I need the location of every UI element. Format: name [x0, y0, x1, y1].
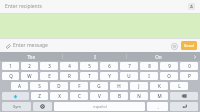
staticText: F	[78, 83, 81, 89]
staticText: U	[127, 73, 131, 79]
button[interactable]: Shift	[2, 92, 29, 100]
button[interactable]: 9	[160, 62, 178, 70]
button[interactable]: Z	[31, 92, 48, 100]
staticText: 1	[9, 63, 12, 69]
button[interactable]: I	[63, 52, 126, 61]
button[interactable]: R	[60, 72, 78, 80]
button[interactable]: 4	[60, 62, 78, 70]
staticText: I	[148, 73, 150, 79]
staticText: J	[138, 83, 140, 89]
button[interactable]: A	[11, 82, 28, 90]
button[interactable]: X	[50, 92, 68, 100]
staticText: I	[94, 54, 96, 60]
button[interactable]: T	[80, 72, 98, 80]
button[interactable]: Add recipient from contacts	[188, 3, 195, 10]
staticText: .	[157, 104, 159, 110]
staticText: Q	[9, 73, 13, 79]
button[interactable]: More suggestions	[190, 52, 200, 61]
staticText: Z	[38, 93, 41, 99]
staticText: The	[27, 54, 35, 60]
staticText: G	[97, 83, 101, 89]
staticText: Enter message	[13, 42, 48, 49]
staticText: L	[178, 83, 181, 89]
staticText: X	[58, 93, 61, 99]
button[interactable]: I	[140, 72, 158, 80]
button[interactable]: Keyboard settings	[33, 102, 52, 111]
staticText: E	[48, 73, 51, 79]
button[interactable]: V	[90, 92, 108, 100]
staticText: 2	[28, 63, 31, 69]
staticText: 3	[48, 63, 51, 69]
button[interactable]: N	[130, 92, 148, 100]
button[interactable]: 8	[140, 62, 158, 70]
staticText: D	[57, 83, 61, 89]
button[interactable]: .	[147, 102, 168, 111]
staticText: T	[88, 73, 91, 79]
button[interactable]: O	[160, 72, 178, 80]
button[interactable]: Enter message	[13, 39, 169, 52]
button[interactable]: 6	[100, 62, 118, 70]
button[interactable]: Emoji	[169, 41, 179, 51]
staticText: 6	[108, 63, 111, 69]
button[interactable]: H	[110, 82, 128, 90]
staticText: P	[188, 73, 191, 79]
button[interactable]: B	[110, 92, 128, 100]
button[interactable]: L	[170, 82, 188, 90]
staticText: 8	[148, 63, 151, 69]
staticText: W	[27, 73, 32, 79]
button[interactable]: E	[40, 72, 58, 80]
staticText: R	[68, 73, 71, 79]
staticText: 0	[188, 63, 191, 69]
staticText: M	[157, 93, 162, 99]
staticText: O	[167, 73, 171, 79]
staticText: N	[137, 93, 141, 99]
button[interactable]: Enter recipients	[0, 0, 200, 13]
button[interactable]: M	[150, 92, 168, 100]
button[interactable]: Send	[181, 41, 197, 50]
button[interactable]: On	[127, 52, 190, 61]
button[interactable]: U	[120, 72, 138, 80]
button[interactable]: Enter	[170, 102, 198, 111]
button[interactable]: F	[70, 82, 88, 90]
button[interactable]: Q	[2, 72, 19, 80]
staticText: K	[158, 83, 161, 89]
button[interactable]: 2	[21, 62, 38, 70]
staticText: Enter recipients	[5, 3, 42, 10]
staticText: On	[155, 54, 162, 60]
button[interactable]: W	[21, 72, 38, 80]
button[interactable]: 0	[180, 62, 198, 70]
button[interactable]: Y	[100, 72, 118, 80]
button[interactable]: Attach file	[3, 41, 12, 50]
staticText: A	[18, 83, 21, 89]
button[interactable]: K	[150, 82, 168, 90]
button[interactable]: 5	[80, 62, 98, 70]
staticText: Send	[184, 43, 194, 49]
button[interactable]: C	[70, 92, 88, 100]
button[interactable]: 7	[120, 62, 138, 70]
staticText: V	[98, 93, 101, 99]
button[interactable]: 3	[40, 62, 58, 70]
button[interactable]: P	[180, 72, 198, 80]
staticText: B	[118, 93, 121, 99]
staticText: S	[38, 83, 41, 89]
staticText: español	[93, 104, 107, 109]
staticText: H	[117, 83, 121, 89]
button[interactable]: The	[0, 52, 62, 61]
staticText: 5	[88, 63, 91, 69]
button[interactable]: S	[30, 82, 48, 90]
button[interactable]: J	[130, 82, 148, 90]
staticText: 9	[168, 63, 171, 69]
button[interactable]: 1	[2, 62, 19, 70]
button[interactable]: Sym	[2, 102, 31, 111]
staticText: C	[78, 93, 81, 99]
button[interactable]: D	[50, 82, 68, 90]
staticText: Sym	[13, 104, 21, 109]
button[interactable]: Backspace	[170, 92, 198, 100]
button[interactable]: español	[54, 102, 145, 111]
staticText: Y	[108, 73, 111, 79]
button[interactable]: G	[90, 82, 108, 90]
staticText: 4	[68, 63, 71, 69]
staticText: 7	[128, 63, 131, 69]
